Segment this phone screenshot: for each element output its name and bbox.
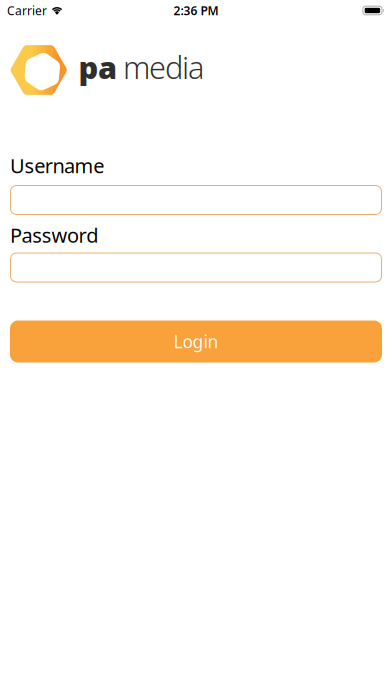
staticText: Username <box>10 152 104 179</box>
staticText: 2:36 PM <box>173 2 218 18</box>
textField[interactable] <box>10 189 382 211</box>
textField[interactable] <box>10 257 382 278</box>
button[interactable]: Login <box>10 320 382 362</box>
staticText: media <box>123 47 204 87</box>
staticText: Password <box>10 222 98 248</box>
staticText: Login <box>173 330 218 353</box>
staticText: pa <box>78 47 117 87</box>
staticText: Carrier <box>7 2 47 18</box>
